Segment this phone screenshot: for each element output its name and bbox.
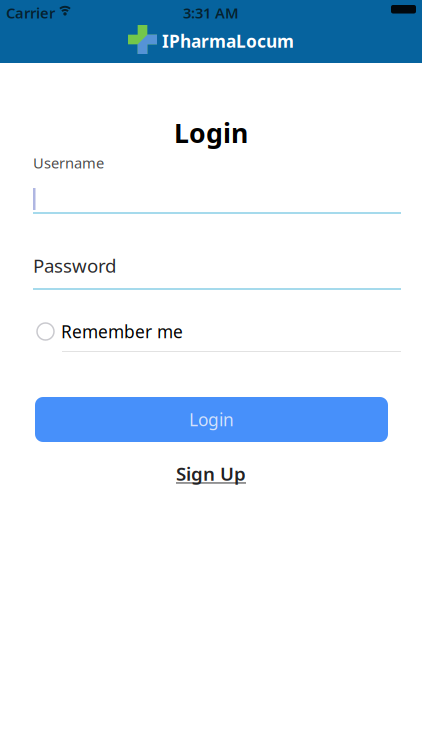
staticText: Password xyxy=(33,253,116,278)
staticText: 3:31 AM xyxy=(183,3,239,22)
button[interactable]: Password xyxy=(33,253,401,290)
staticText: Remember me xyxy=(61,320,183,343)
staticText: Carrier xyxy=(6,3,55,22)
staticText: Username xyxy=(33,153,104,172)
button[interactable]: Username xyxy=(33,153,401,214)
staticText: IPharmaLocum xyxy=(162,29,294,52)
staticText: Sign Up xyxy=(176,461,246,486)
staticText: Login xyxy=(174,115,248,150)
button[interactable]: Remember me xyxy=(37,320,183,343)
button[interactable]: Login xyxy=(35,397,388,442)
staticText: Login xyxy=(189,408,234,431)
button[interactable]: Sign Up xyxy=(176,461,246,486)
